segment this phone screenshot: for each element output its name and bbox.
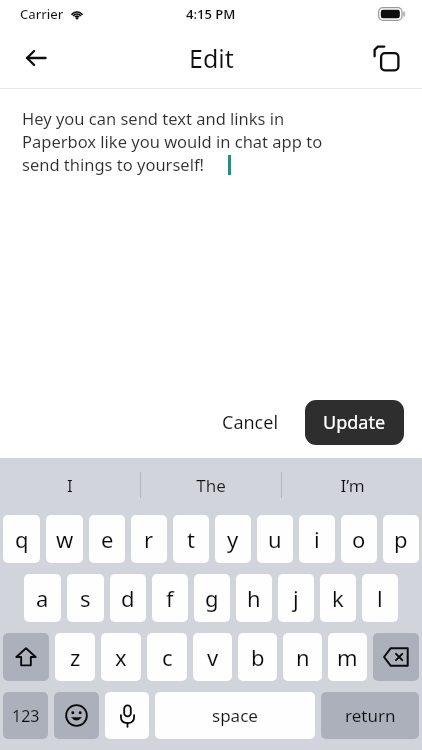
staticText: f bbox=[166, 583, 174, 613]
staticText: g bbox=[205, 583, 219, 613]
button[interactable]: 123 bbox=[3, 692, 48, 739]
button[interactable]: i bbox=[299, 515, 335, 563]
staticText: Carrier bbox=[20, 5, 64, 23]
staticText: y bbox=[227, 524, 239, 554]
button[interactable]: c bbox=[147, 633, 187, 681]
button[interactable]: Backspace bbox=[373, 633, 419, 681]
button[interactable]: p bbox=[383, 515, 419, 563]
button[interactable]: a bbox=[24, 574, 61, 622]
staticText: a bbox=[36, 583, 49, 613]
staticText: return bbox=[345, 704, 396, 727]
staticText: u bbox=[268, 524, 282, 554]
staticText: Edit bbox=[189, 41, 234, 75]
button[interactable]: h bbox=[236, 574, 272, 622]
staticText: x bbox=[115, 642, 127, 672]
button[interactable]: q bbox=[3, 515, 40, 563]
button[interactable]: Cancel bbox=[210, 402, 291, 443]
staticText: c bbox=[162, 642, 173, 672]
staticText: j bbox=[293, 583, 299, 613]
staticText: s bbox=[80, 583, 91, 613]
button[interactable]: w bbox=[46, 515, 83, 563]
staticText: h bbox=[247, 583, 261, 613]
staticText: Update bbox=[323, 410, 386, 435]
button[interactable]: Emoji bbox=[54, 692, 99, 739]
button[interactable]: The bbox=[141, 458, 281, 512]
button[interactable]: I bbox=[0, 458, 140, 512]
staticText: i bbox=[314, 524, 320, 554]
button[interactable]: Dictation bbox=[105, 692, 149, 739]
staticText: space bbox=[212, 704, 258, 727]
staticText: I bbox=[67, 474, 73, 497]
button[interactable]: I’m bbox=[282, 458, 422, 512]
button[interactable]: Back bbox=[14, 36, 58, 80]
staticText: o bbox=[352, 524, 366, 554]
staticText: I’m bbox=[340, 474, 365, 497]
staticText: 123 bbox=[12, 705, 40, 727]
button[interactable]: Copy bbox=[364, 36, 408, 80]
staticText: z bbox=[70, 642, 81, 672]
staticText: m bbox=[337, 642, 358, 672]
button[interactable]: x bbox=[101, 633, 141, 681]
button[interactable]: s bbox=[67, 574, 104, 622]
button[interactable]: g bbox=[194, 574, 230, 622]
staticText: Cancel bbox=[222, 410, 279, 435]
button[interactable]: Update bbox=[305, 400, 404, 445]
button[interactable]: z bbox=[55, 633, 95, 681]
button[interactable]: Shift bbox=[3, 633, 49, 681]
staticText: r bbox=[144, 524, 154, 554]
button[interactable]: space bbox=[155, 692, 315, 739]
staticText: n bbox=[296, 642, 310, 672]
button[interactable]: m bbox=[328, 633, 367, 681]
button[interactable]: o bbox=[341, 515, 377, 563]
staticText: t bbox=[187, 524, 195, 554]
button[interactable]: v bbox=[193, 633, 232, 681]
staticText: l bbox=[377, 583, 383, 613]
button[interactable]: n bbox=[283, 633, 322, 681]
staticText: Hey you can send text and links in Paper… bbox=[22, 107, 362, 176]
button[interactable]: y bbox=[215, 515, 251, 563]
staticText: k bbox=[332, 583, 344, 613]
button[interactable]: t bbox=[173, 515, 209, 563]
staticText: p bbox=[394, 524, 408, 554]
button[interactable]: d bbox=[110, 574, 146, 622]
staticText: v bbox=[207, 642, 219, 672]
staticText: e bbox=[101, 524, 114, 554]
staticText: q bbox=[15, 524, 29, 554]
staticText: w bbox=[56, 524, 74, 554]
button[interactable]: u bbox=[257, 515, 293, 563]
button[interactable]: r bbox=[131, 515, 167, 563]
staticText: b bbox=[251, 642, 265, 672]
button[interactable]: f bbox=[152, 574, 188, 622]
button[interactable]: Hey you can send text and links in Paper… bbox=[0, 89, 422, 386]
button[interactable]: k bbox=[320, 574, 356, 622]
staticText: d bbox=[121, 583, 135, 613]
button[interactable]: b bbox=[238, 633, 277, 681]
staticText: The bbox=[196, 474, 226, 497]
button[interactable]: e bbox=[89, 515, 125, 563]
button[interactable]: return bbox=[321, 692, 419, 739]
button[interactable]: l bbox=[362, 574, 398, 622]
button[interactable]: j bbox=[278, 574, 314, 622]
staticText: 4:15 PM bbox=[186, 5, 236, 23]
